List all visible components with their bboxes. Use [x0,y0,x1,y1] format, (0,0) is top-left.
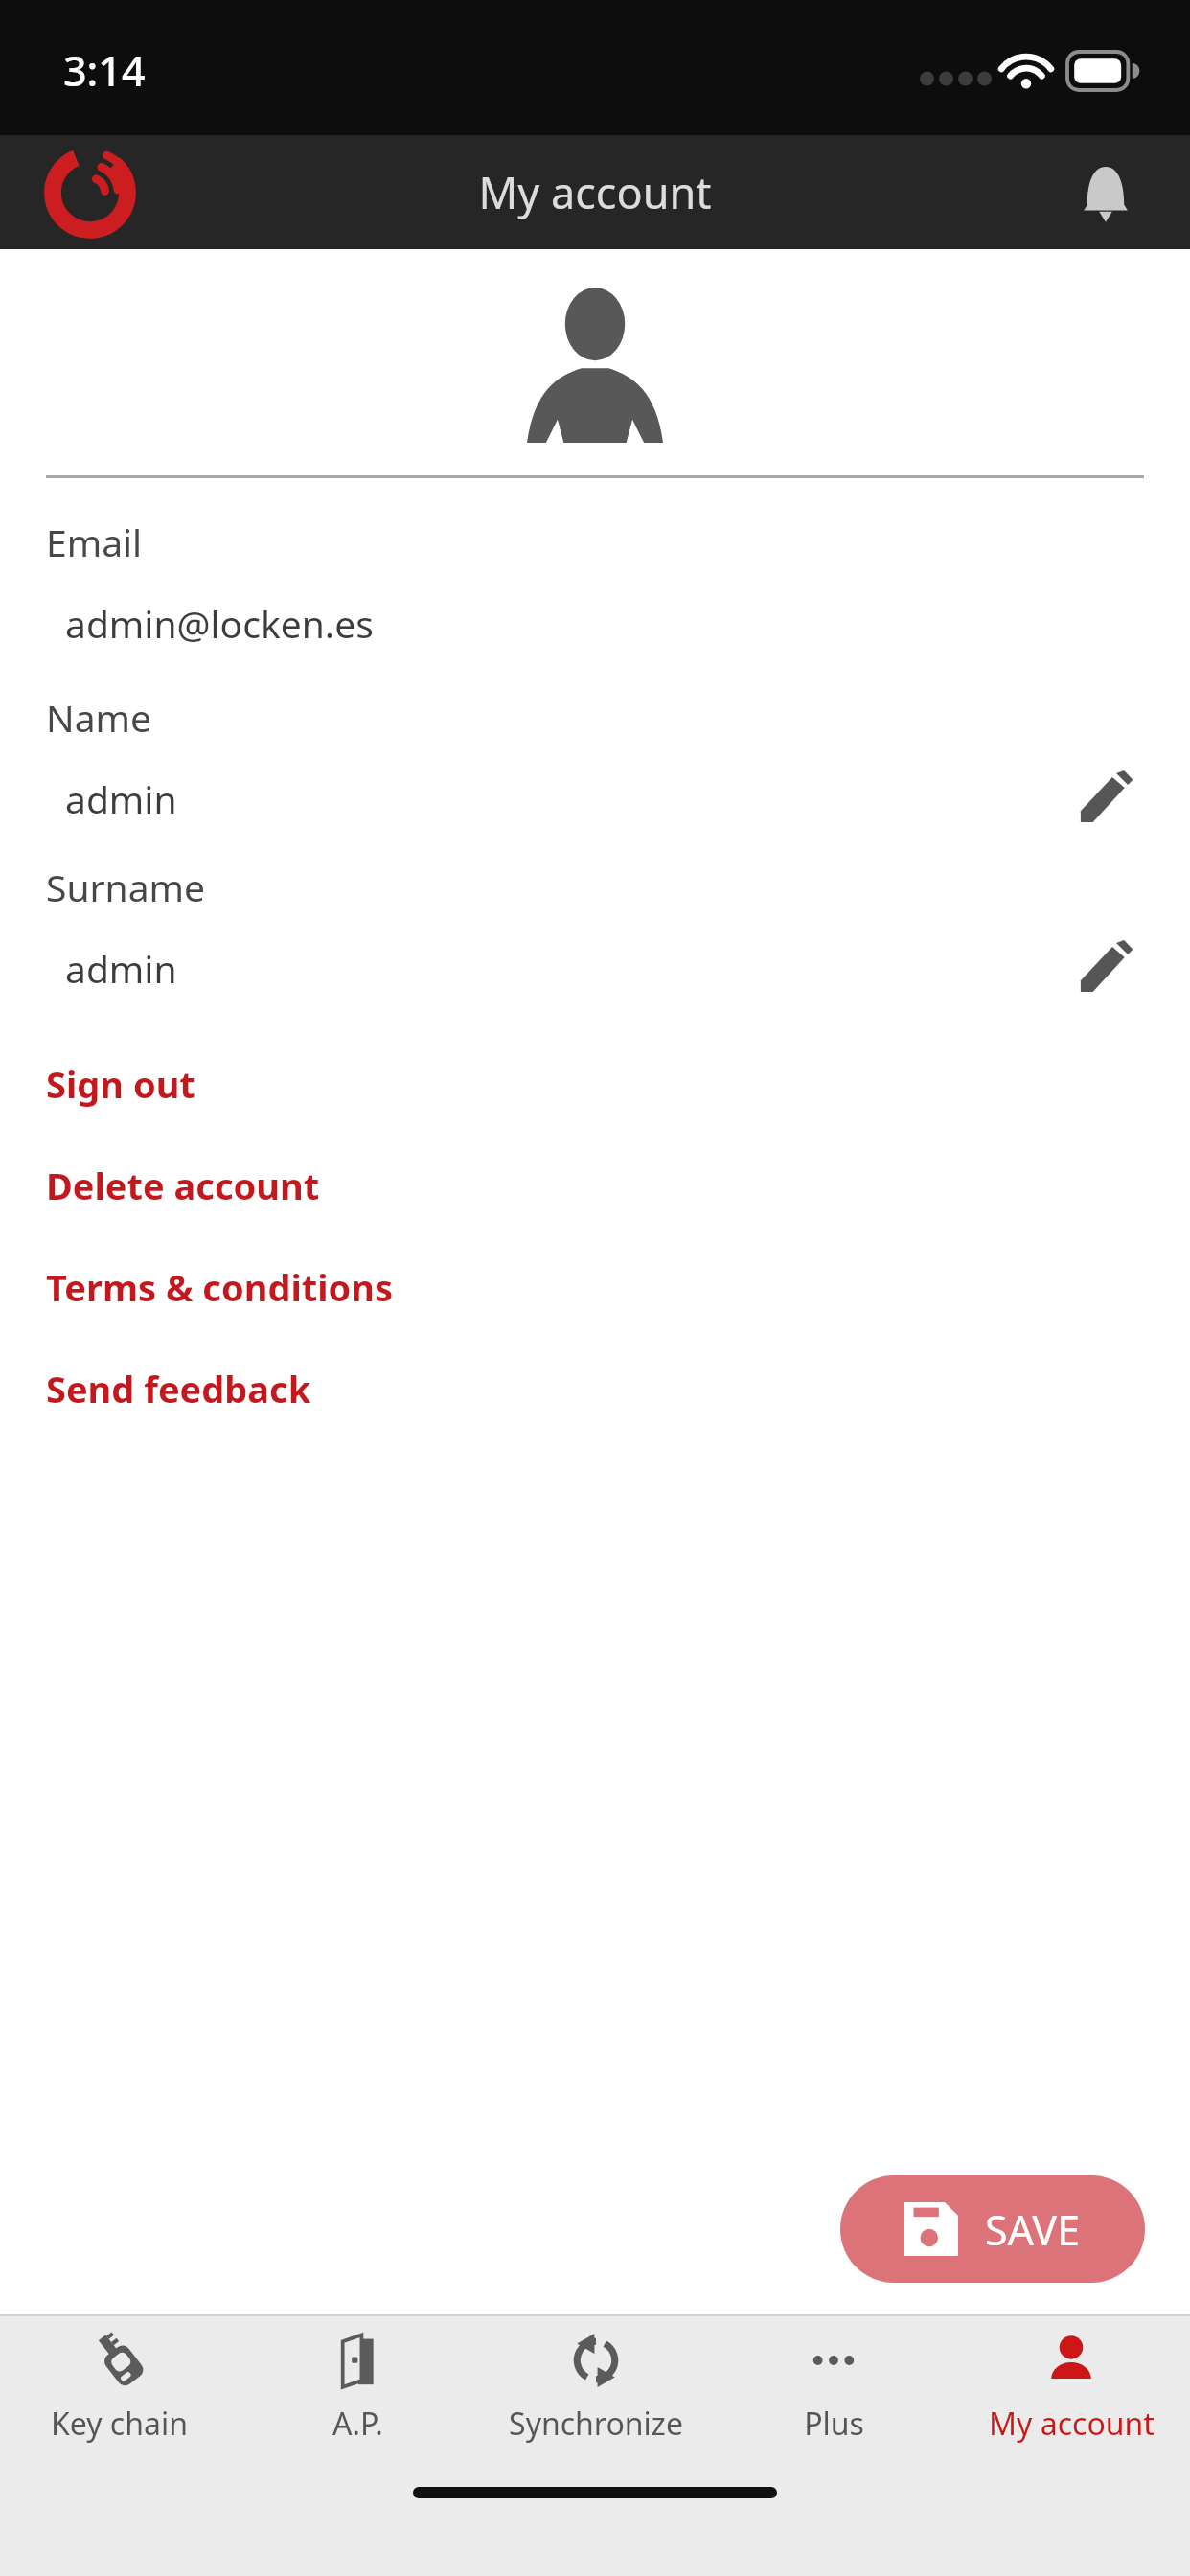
staticText: My account [989,2403,1155,2445]
button[interactable]: Name [0,692,1190,837]
button[interactable]: Edit Name [1067,760,1144,837]
button[interactable]: Key chain [0,2314,239,2458]
staticText: A.P. [332,2403,383,2445]
staticText: admin [65,773,1067,824]
staticText: My account [478,163,712,221]
staticText: Terms & conditions [46,1262,394,1312]
button[interactable]: SAVE [840,2175,1145,2283]
staticText: admin@locken.es [65,598,1067,649]
staticText: SAVE [985,2201,1081,2258]
staticText: Plus [804,2403,864,2445]
button[interactable]: Edit Surname [1067,930,1144,1006]
button[interactable]: A.P. [239,2314,477,2458]
staticText: admin [65,943,1067,994]
staticText: Email [46,517,143,567]
button[interactable]: Plus [715,2314,952,2458]
staticText: 3:14 [63,42,146,99]
button[interactable]: My account [952,2314,1190,2458]
button[interactable]: Locken [36,139,144,246]
button[interactable]: Notifications [1058,145,1154,241]
button[interactable]: Send feedback [0,1338,1190,1439]
button[interactable]: Terms & conditions [0,1236,1190,1338]
button[interactable]: Synchronize [477,2314,715,2458]
button[interactable]: Surname [0,862,1190,1006]
staticText: Synchronize [509,2403,683,2445]
button[interactable]: Delete account [0,1135,1190,1236]
staticText: Key chain [51,2403,188,2445]
staticText: Sign out [46,1059,195,1109]
staticText: Name [46,692,151,743]
staticText: Surname [46,862,206,912]
button[interactable]: Sign out [0,1033,1190,1135]
staticText: Send feedback [46,1364,311,1414]
staticText: Delete account [46,1161,320,1210]
